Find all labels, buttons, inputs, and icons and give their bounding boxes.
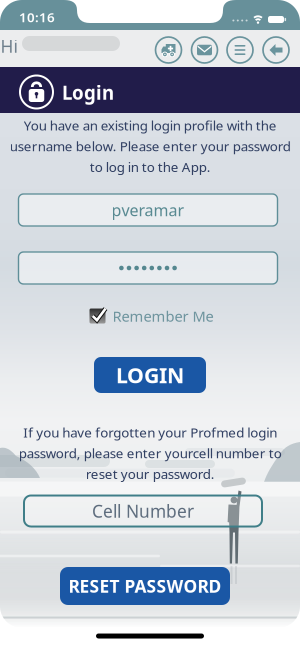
staticText: pveramar — [111, 199, 184, 221]
staticText: Login — [62, 80, 114, 105]
button[interactable]: Back — [262, 36, 290, 64]
staticText: Remember Me — [112, 306, 213, 326]
button[interactable]: Menu — [226, 36, 254, 64]
staticText: If you have forgotten your Profmed login… — [18, 423, 281, 482]
staticText: RESET PASSWORD — [68, 574, 221, 597]
staticText: Hi — [0, 34, 17, 57]
button[interactable]: Remember Me — [88, 306, 213, 326]
staticText: You have an existing login profile with … — [9, 116, 290, 175]
button[interactable]: LOGIN — [94, 357, 206, 393]
button[interactable]: Emergency — [154, 36, 182, 64]
button[interactable]: pveramar — [18, 194, 277, 226]
staticText: 10:16 — [19, 8, 55, 26]
button[interactable]: RESET PASSWORD — [60, 567, 230, 605]
staticText: Cell Number — [92, 499, 194, 522]
staticText: LOGIN — [116, 361, 184, 389]
button[interactable] — [18, 252, 277, 284]
button[interactable]: Cell Number — [24, 495, 262, 526]
button[interactable]: Messages — [190, 36, 218, 64]
